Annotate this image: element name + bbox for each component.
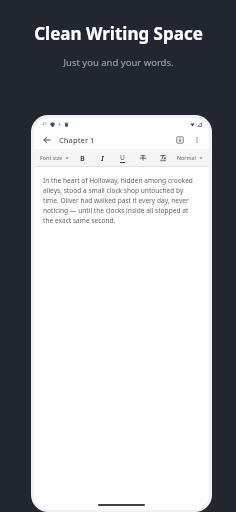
staticText: .25	[41, 121, 47, 127]
staticText: Chapter 1	[59, 135, 95, 145]
button[interactable]: Font size	[39, 152, 70, 163]
staticText: Font size	[40, 154, 63, 161]
button[interactable]: Strikethrough	[136, 151, 149, 164]
button[interactable]: Underline	[116, 151, 129, 164]
button[interactable]: Italic	[96, 151, 109, 164]
staticText: Normal	[177, 154, 197, 161]
staticText: In the heart of Holloway, hidden among c…	[43, 176, 200, 225]
button[interactable]: Back	[39, 132, 54, 147]
button[interactable]: Save	[173, 133, 187, 147]
button[interactable]: Bold	[76, 151, 89, 164]
staticText: Just you and your words.	[63, 56, 174, 69]
staticText: B	[80, 153, 85, 163]
button[interactable]: More options	[190, 133, 204, 147]
button[interactable]: Normal	[176, 152, 204, 163]
staticText: I	[101, 153, 104, 163]
button[interactable]: Clear formatting	[156, 151, 169, 164]
staticText: Clean Writing Space	[34, 22, 203, 45]
staticText: U	[120, 153, 125, 162]
